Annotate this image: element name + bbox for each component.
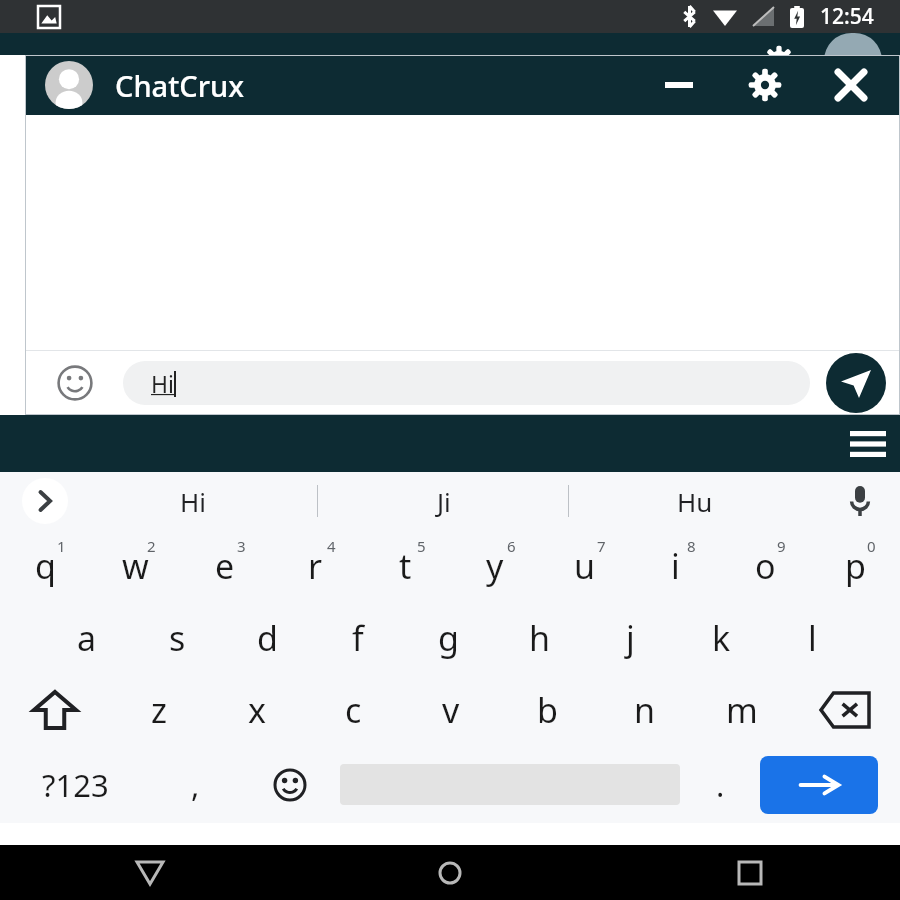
button[interactable]: Enter [760, 756, 878, 814]
button[interactable]: Emoji [240, 746, 340, 823]
staticText: ChatCrux [115, 66, 244, 105]
staticText: j [626, 615, 635, 661]
button[interactable]: m [693, 674, 790, 746]
staticText: y [486, 543, 504, 589]
staticText: 2 [147, 536, 156, 556]
button[interactable]: Send [826, 353, 886, 413]
button[interactable]: r [270, 530, 360, 602]
staticText: 4 [327, 536, 336, 556]
staticText: o [755, 543, 776, 589]
button[interactable]: h [494, 602, 585, 674]
button[interactable]: f [312, 602, 403, 674]
staticText: h [529, 615, 551, 661]
button[interactable]: Recents [600, 845, 900, 900]
staticText: z [151, 687, 167, 733]
button[interactable]: k [676, 602, 767, 674]
staticText: v [442, 687, 460, 733]
button[interactable]: l [767, 602, 858, 674]
button[interactable]: Voice input [820, 472, 900, 530]
staticText: l [808, 615, 817, 661]
button[interactable]: d [222, 602, 312, 674]
staticText: 1 [57, 536, 66, 556]
button[interactable]: Ji [318, 472, 569, 530]
button[interactable]: t [360, 530, 450, 602]
staticText: b [537, 687, 558, 733]
staticText: n [634, 687, 656, 733]
staticText: Ji [437, 484, 451, 519]
button[interactable]: o [720, 530, 810, 602]
staticText: t [399, 543, 412, 589]
button[interactable]: e [180, 530, 270, 602]
button[interactable]: ?123 [0, 746, 150, 823]
staticText: x [248, 687, 266, 733]
staticText: Hi [151, 368, 174, 399]
staticText: k [712, 615, 731, 661]
staticText: r [308, 543, 323, 589]
button[interactable]: v [402, 674, 499, 746]
button[interactable]: g [403, 602, 494, 674]
staticText: 5 [417, 536, 426, 556]
staticText: g [438, 615, 459, 661]
button[interactable]: p [810, 530, 900, 602]
button[interactable]: z [110, 674, 208, 746]
staticText: w [122, 543, 149, 589]
button[interactable]: w [90, 530, 180, 602]
staticText: ?123 [42, 764, 109, 806]
button[interactable]: Backspace [790, 674, 900, 746]
staticText: 9 [777, 536, 786, 556]
staticText: i [671, 543, 680, 589]
button[interactable]: Menu [836, 415, 900, 472]
button[interactable]: More suggestions [22, 478, 68, 524]
button[interactable]: b [499, 674, 596, 746]
staticText: Hu [677, 484, 713, 519]
button[interactable]: Hu [569, 472, 820, 530]
button[interactable]: Settings [740, 60, 790, 110]
button[interactable]: n [596, 674, 693, 746]
button[interactable]: i [630, 530, 720, 602]
button[interactable]: u [540, 530, 630, 602]
button[interactable]: . [680, 746, 760, 823]
staticText: 6 [507, 536, 516, 556]
staticText: 0 [867, 536, 876, 556]
button[interactable]: Shift [0, 674, 110, 746]
staticText: c [345, 687, 362, 733]
staticText: q [35, 543, 56, 589]
staticText: 12:54 [820, 2, 874, 31]
button[interactable]: Close [826, 60, 876, 110]
button[interactable]: j [585, 602, 676, 674]
staticText: f [352, 615, 364, 661]
staticText: u [574, 543, 596, 589]
staticText: d [257, 615, 278, 661]
button[interactable]: q [0, 530, 90, 602]
staticText: a [77, 615, 97, 661]
button[interactable]: , [150, 746, 240, 823]
button[interactable]: Hi [123, 361, 810, 405]
button[interactable]: Emoji [51, 359, 99, 407]
staticText: p [845, 543, 866, 589]
button[interactable]: a [42, 602, 132, 674]
staticText: , [191, 764, 200, 806]
staticText: Hi [180, 484, 206, 519]
staticText: 8 [687, 536, 696, 556]
staticText: m [726, 687, 758, 733]
button[interactable]: Minimize [654, 60, 704, 110]
staticText: e [215, 543, 235, 589]
button[interactable]: Home [300, 845, 600, 900]
staticText: s [169, 615, 186, 661]
button[interactable]: Hi [68, 472, 318, 530]
button[interactable]: c [305, 674, 402, 746]
button[interactable]: Back [0, 845, 300, 900]
button[interactable]: s [132, 602, 222, 674]
staticText: 7 [597, 536, 606, 556]
button[interactable]: x [208, 674, 305, 746]
staticText: . [716, 764, 725, 806]
staticText: 3 [237, 536, 246, 556]
button[interactable]: y [450, 530, 540, 602]
